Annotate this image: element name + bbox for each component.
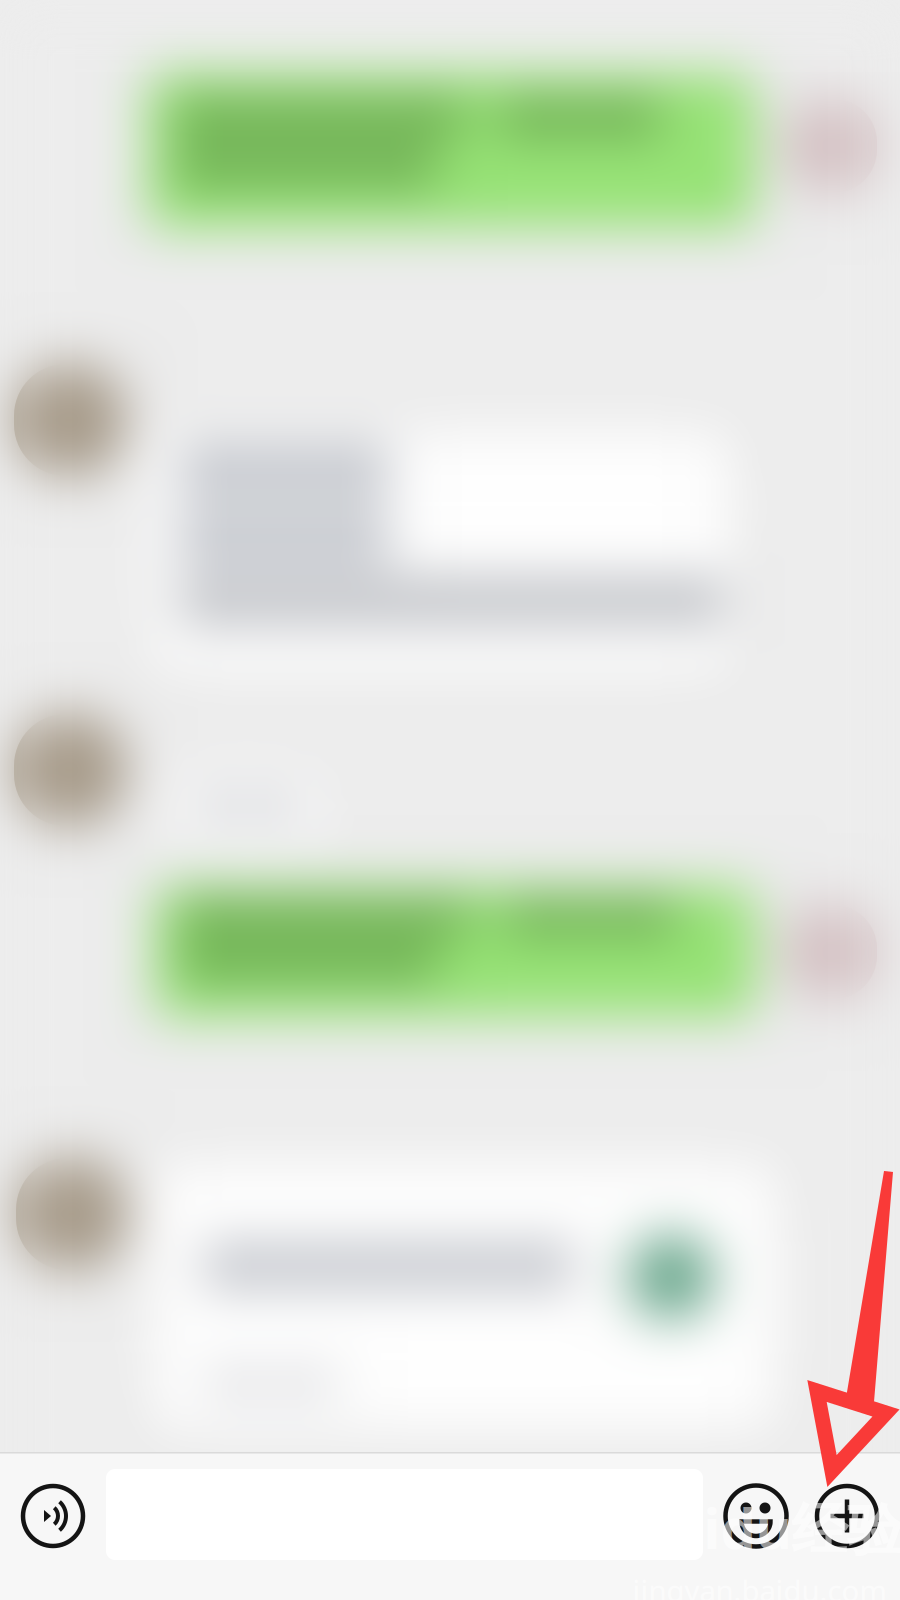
button[interactable]: More [799,1454,895,1578]
staticText: Baidu经验 [632,1490,900,1565]
button[interactable]: Message input field [106,1452,703,1576]
button[interactable]: Emoji [708,1454,804,1578]
button[interactable]: Hold to talk [0,1454,106,1578]
